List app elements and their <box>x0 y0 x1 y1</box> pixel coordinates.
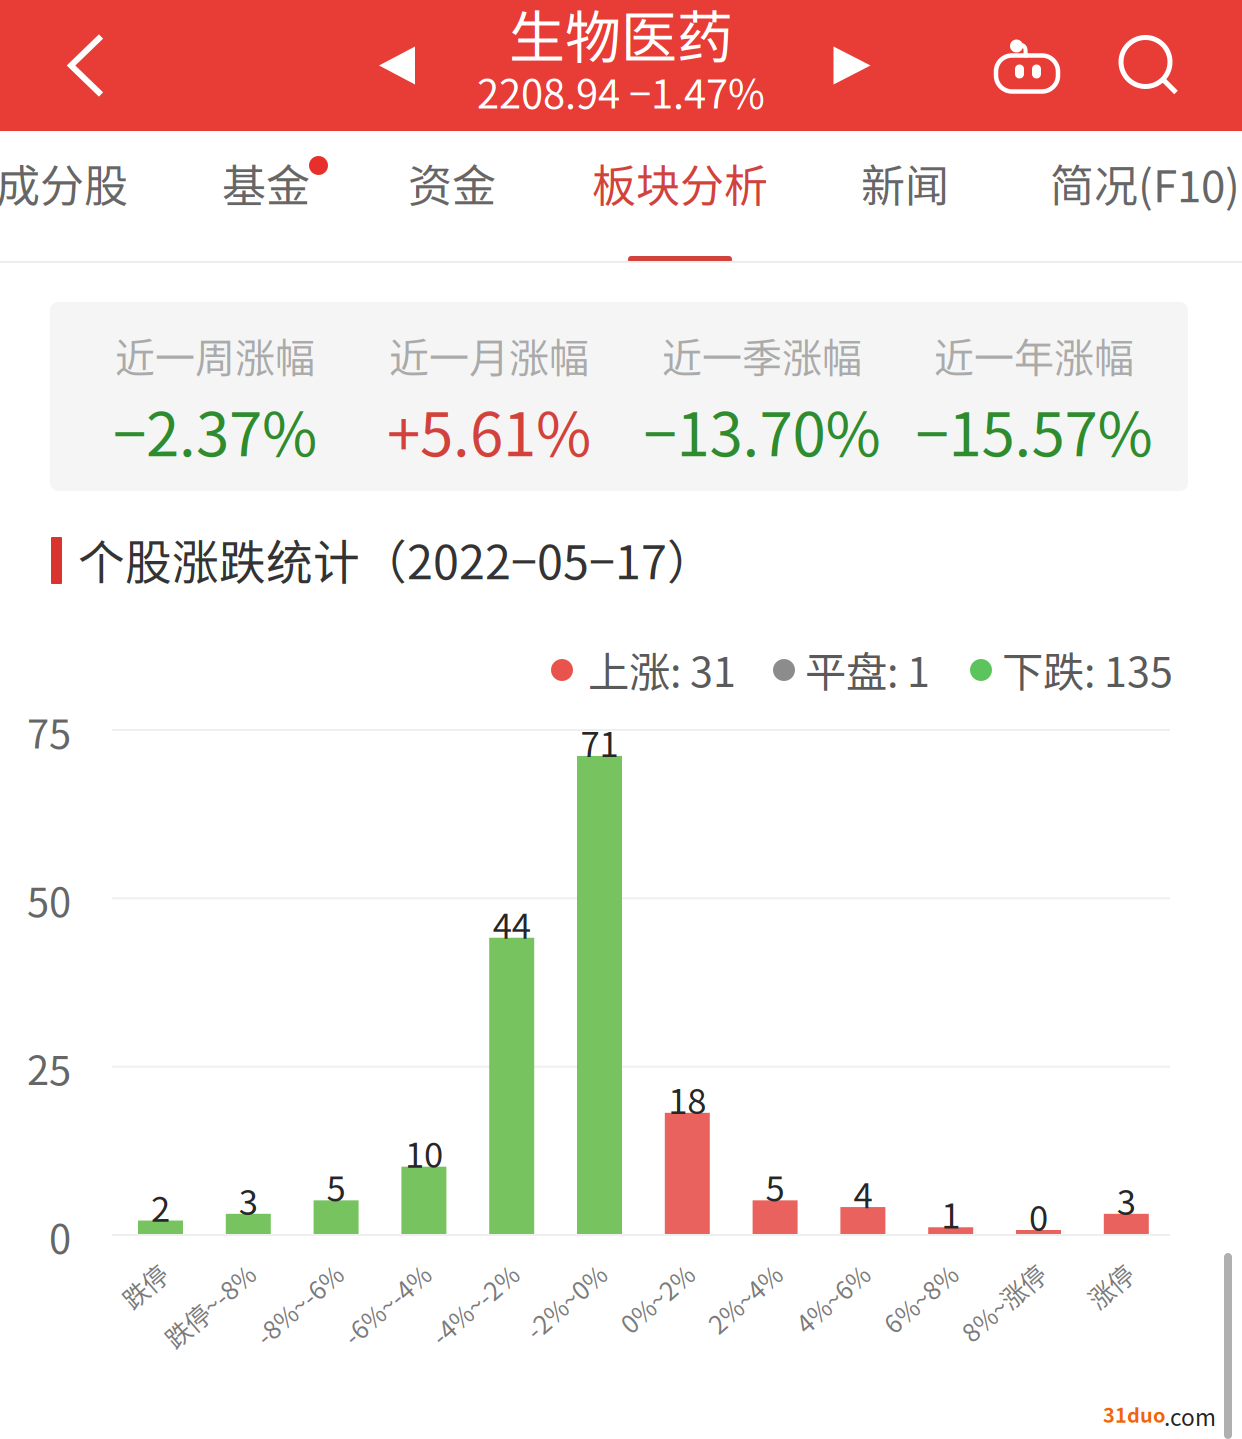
staticText: 10 <box>405 1128 443 1178</box>
button[interactable]: 返回 <box>31 0 141 131</box>
staticText: -4%~-2% <box>397 1256 503 1292</box>
staticText: 基金 <box>222 151 310 215</box>
staticText: 近一周涨幅 <box>115 326 315 384</box>
button[interactable]: 基金 <box>171 131 361 263</box>
staticText: 4%~6% <box>766 1256 854 1292</box>
staticText: .com <box>1164 1400 1216 1432</box>
staticText: 成分股 <box>0 151 128 215</box>
staticText: 资金 <box>408 151 496 215</box>
staticText: −2.37% <box>113 387 317 473</box>
button[interactable]: 搜索 <box>1094 0 1204 131</box>
button[interactable]: 下一个板块 <box>807 0 897 131</box>
staticText: 18 <box>668 1074 706 1124</box>
button[interactable]: 新闻 <box>810 131 1000 263</box>
staticText: 0 <box>49 1207 71 1265</box>
staticText: 75 <box>27 702 71 760</box>
staticText: 涨停 <box>1067 1256 1117 1292</box>
button[interactable]: 板块分析 <box>560 131 800 263</box>
staticText: 0 <box>1029 1191 1048 1241</box>
staticText: 25 <box>27 1039 71 1097</box>
staticText: 44 <box>493 899 531 949</box>
staticText: −15.57% <box>915 387 1152 473</box>
staticText: 71 <box>580 717 618 767</box>
staticText: 近一月涨幅 <box>389 326 589 384</box>
staticText: 平盘: 1 <box>805 639 930 699</box>
staticText: +5.61% <box>387 387 591 473</box>
staticText: 板块分析 <box>592 151 768 215</box>
staticText: -6%~-4% <box>309 1256 415 1292</box>
staticText: 1 <box>941 1188 960 1238</box>
staticText: 简况(F10) <box>1050 151 1240 215</box>
staticText: 0%~2% <box>590 1256 678 1292</box>
staticText: 5 <box>327 1161 346 1211</box>
staticText: 31duo <box>1103 1399 1166 1428</box>
staticText: 2 <box>151 1181 170 1232</box>
staticText: -8%~-6% <box>221 1256 327 1292</box>
staticText: 50 <box>27 870 71 928</box>
staticText: 上涨: 31 <box>588 639 736 699</box>
staticText: 3 <box>1117 1175 1136 1225</box>
staticText: 5 <box>766 1161 785 1211</box>
button[interactable]: 资金 <box>357 131 547 263</box>
staticText: 6%~8% <box>854 1256 942 1292</box>
staticText: -2%~0% <box>493 1256 590 1292</box>
button[interactable]: 上一个板块 <box>352 0 442 131</box>
staticText: 生物医药 <box>509 0 733 74</box>
staticText: 下跌: 135 <box>1002 639 1173 699</box>
staticText: 跌停 <box>101 1256 151 1292</box>
staticText: 新闻 <box>861 151 949 215</box>
button[interactable]: 简况(F10) <box>1005 131 1242 263</box>
button[interactable]: 成分股 <box>0 131 180 263</box>
staticText: 8%~涨停 <box>928 1256 1029 1292</box>
staticText: 4 <box>853 1168 872 1218</box>
staticText: 近一年涨幅 <box>934 326 1134 384</box>
button[interactable]: 智能助手 <box>969 0 1085 131</box>
staticText: 3 <box>239 1175 258 1225</box>
staticText: 2%~4% <box>678 1256 766 1292</box>
staticText: 个股涨跌统计（2022−05−17） <box>78 525 714 593</box>
staticText: 近一季涨幅 <box>662 326 862 384</box>
staticText: −13.70% <box>643 387 880 473</box>
staticText: 2208.94 −1.47% <box>477 62 765 120</box>
staticText: 跌停~-8% <box>129 1256 239 1292</box>
